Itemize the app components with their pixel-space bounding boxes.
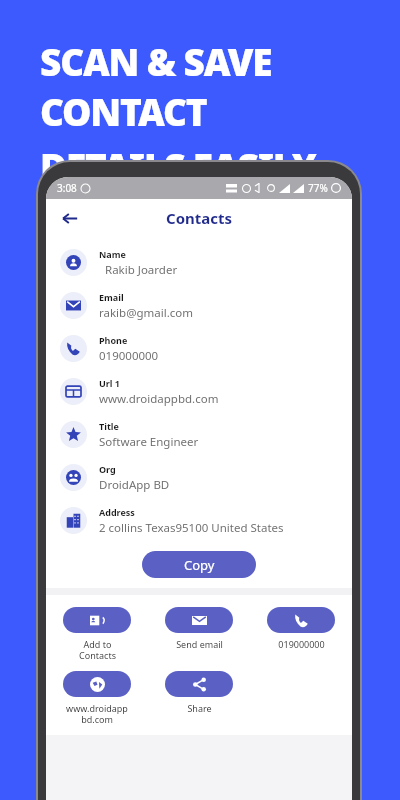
button[interactable]: Address [46, 499, 352, 542]
staticText: Rakib Joarder [99, 262, 178, 278]
other: Share [165, 671, 233, 697]
button[interactable]: Org [46, 456, 352, 499]
other: Send email [165, 607, 233, 633]
button[interactable]: Open website [46, 669, 148, 727]
staticText: DETAILS EASILY [40, 141, 316, 191]
button[interactable]: Title [46, 413, 352, 456]
staticText: Software Engineer [99, 434, 199, 450]
staticText: 2 collins Texas95100 United States [99, 520, 284, 536]
staticText: Org [99, 463, 116, 475]
button[interactable]: Call 019000000 [250, 605, 352, 652]
button[interactable]: Name [46, 241, 352, 284]
staticText: 019000000 [99, 348, 159, 364]
staticText: 019000000 [278, 638, 325, 650]
staticText: Name [99, 248, 126, 260]
staticText: Copy [184, 556, 215, 574]
button[interactable]: Url 1 [46, 370, 352, 413]
staticText: Contacts [166, 208, 233, 228]
staticText: Send email [176, 638, 223, 650]
staticText: www.droidappbd.com [99, 391, 219, 407]
other: Add to Contacts [63, 607, 131, 633]
staticText: rakib@gmail.com [99, 305, 194, 321]
staticText: Address [99, 506, 135, 518]
staticText: Title [99, 420, 119, 432]
button[interactable]: Share [148, 669, 250, 716]
staticText: DroidApp BD [99, 477, 170, 493]
button[interactable]: Add to Contacts [46, 605, 148, 663]
button[interactable]: Phone [46, 327, 352, 370]
other: Call 019000000 [267, 607, 335, 633]
other: Open website [63, 671, 131, 697]
staticText: SCAN & SAVE CONTACT [40, 36, 400, 136]
staticText: Email [99, 291, 124, 303]
staticText: Add to Contacts [79, 638, 116, 661]
staticText: Share [187, 702, 212, 714]
staticText: Phone [99, 334, 128, 346]
staticText: www.droidapp bd.com [66, 702, 128, 725]
button[interactable]: Back [54, 203, 84, 233]
staticText: Url 1 [99, 377, 120, 389]
button[interactable]: Email [46, 284, 352, 327]
button[interactable]: Copy [142, 551, 256, 578]
staticText: 3:08 [57, 181, 77, 195]
staticText: 77% [308, 181, 328, 195]
button[interactable]: Send email [148, 605, 250, 652]
